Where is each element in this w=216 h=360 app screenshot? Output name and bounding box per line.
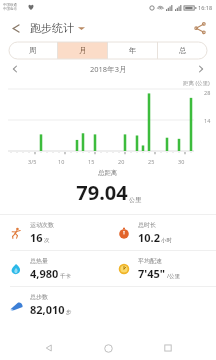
button[interactable]: 总步数 [0, 287, 108, 322]
staticText: 步 [66, 309, 72, 316]
staticText: 14 [204, 117, 211, 124]
staticText: 10 [58, 158, 65, 165]
button[interactable]: 跑步统计 [30, 21, 85, 35]
staticText: 7'45" [138, 266, 166, 281]
staticText: 周 [29, 46, 37, 55]
button[interactable]: 总 [158, 42, 207, 59]
staticText: 运动次数 [30, 221, 54, 229]
staticText: 跑步统计 [30, 21, 74, 35]
staticText: 总步数 [30, 293, 48, 301]
button[interactable]: 运动次数 [0, 215, 108, 250]
button[interactable]: Previous month [8, 62, 22, 76]
staticText: 平均配速 [138, 257, 162, 265]
staticText: /公里 [167, 272, 181, 280]
staticText: 小时 [161, 237, 172, 244]
staticText: 3/5 [28, 158, 37, 165]
staticText: 月 [79, 46, 87, 55]
staticText: 总热量 [30, 257, 48, 265]
staticText: 15 [88, 158, 95, 165]
staticText: 16 [30, 230, 43, 245]
staticText: 次 [44, 237, 50, 244]
staticText: 25 [148, 158, 155, 165]
staticText: 28 [204, 89, 211, 96]
staticText: 总 [179, 46, 187, 55]
button[interactable]: 平均配速 [108, 251, 216, 286]
staticText: 20 [118, 158, 125, 165]
staticText: 中国电信 [3, 7, 17, 11]
staticText: 2018年3月 [90, 64, 127, 74]
button[interactable]: Home [97, 337, 119, 359]
staticText: 4,980 [30, 266, 59, 281]
button[interactable]: Share [190, 18, 210, 38]
staticText: 中国联通 [3, 3, 17, 7]
button[interactable]: 总热量 [0, 251, 108, 286]
button[interactable]: Recents [157, 337, 179, 359]
staticText: 总时长 [138, 221, 156, 229]
button[interactable]: 总时长 [108, 215, 216, 250]
staticText: 距离 (公里) [183, 79, 210, 87]
staticText: 年 [129, 46, 137, 55]
staticText: 总距离 [98, 169, 118, 177]
button[interactable]: Next month [194, 62, 208, 76]
staticText: 82,010 [30, 302, 65, 317]
button[interactable]: 年 [108, 42, 157, 59]
button[interactable]: Back [38, 337, 60, 359]
staticText: 千卡 [60, 273, 71, 280]
staticText: 79.04 [76, 179, 128, 206]
staticText: 16:18 [198, 4, 213, 11]
button[interactable]: Back [6, 18, 26, 38]
staticText: 10.2 [138, 230, 160, 245]
staticText: 公里 [129, 196, 141, 204]
button[interactable]: 月 [58, 42, 107, 59]
button[interactable]: 周 [9, 42, 57, 59]
staticText: 30 [178, 158, 185, 165]
